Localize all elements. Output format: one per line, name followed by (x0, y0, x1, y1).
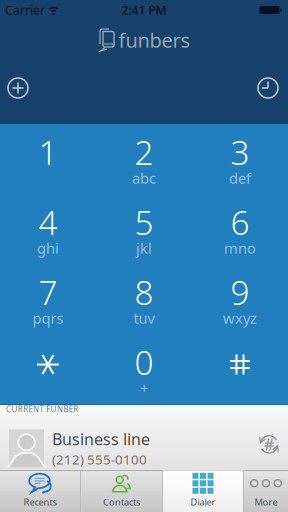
staticText: 0 (134, 340, 153, 384)
button[interactable]: 5 (96, 194, 192, 264)
button[interactable]: Contacts (81, 470, 162, 512)
button[interactable]: Star (0, 334, 96, 404)
button[interactable]: Recents (0, 470, 80, 512)
button[interactable]: Switch funber (256, 435, 288, 461)
staticText: wxyz (223, 308, 257, 328)
button[interactable]: 9 (192, 264, 288, 334)
staticText: ghi (37, 238, 59, 258)
button[interactable]: 0 (96, 334, 192, 404)
button[interactable]: Dialer (163, 470, 243, 512)
staticText: jkl (136, 238, 152, 258)
staticText: tuv (133, 308, 154, 328)
staticText: abc (132, 168, 156, 188)
staticText: Recents (23, 496, 56, 508)
staticText: funbers (118, 27, 190, 53)
staticText: 4 (38, 200, 57, 244)
button[interactable]: 2 (96, 124, 192, 194)
staticText: CURRENT FUNBER (6, 404, 78, 414)
button[interactable]: Add funber (0, 77, 29, 99)
staticText: 6 (230, 200, 249, 244)
staticText: mno (224, 238, 256, 258)
staticText: def (229, 168, 251, 188)
button[interactable]: 4 (0, 194, 96, 264)
button[interactable]: 3 (192, 124, 288, 194)
staticText: 2 (134, 130, 153, 174)
staticText: 5 (134, 200, 153, 244)
button[interactable]: 7 (0, 264, 96, 334)
staticText: 7 (38, 270, 57, 314)
staticText: 3 (230, 130, 249, 174)
staticText: 8 (134, 270, 153, 314)
button[interactable]: 6 (192, 194, 288, 264)
staticText: + (140, 378, 148, 398)
staticText: 1 (38, 130, 57, 174)
staticText: Business line (52, 428, 150, 449)
staticText: pqrs (32, 308, 63, 328)
staticText: 2:41 PM (121, 2, 166, 18)
staticText: Contacts (103, 496, 140, 508)
staticText: # (264, 434, 274, 455)
button[interactable]: 1 (0, 124, 96, 194)
staticText: More (254, 496, 277, 508)
staticText: Dialer (190, 496, 215, 508)
button[interactable]: Pound (192, 334, 288, 404)
button[interactable]: Business line (0, 428, 256, 468)
staticText: (212) 555-0100 (52, 451, 147, 468)
button[interactable]: 8 (96, 264, 192, 334)
button[interactable]: History (257, 77, 288, 99)
button[interactable]: More (244, 470, 288, 512)
staticText: 9 (230, 270, 249, 314)
staticText: Carrier (5, 2, 45, 18)
